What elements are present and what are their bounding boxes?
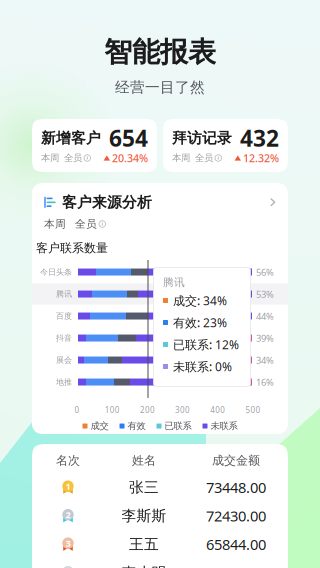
- staticText: 73448.00: [206, 477, 266, 497]
- button[interactable]: 拜访记录: [163, 119, 288, 172]
- staticText: 经营一目了然: [115, 78, 205, 96]
- staticText: 2: [65, 508, 70, 521]
- button[interactable]: 4: [40, 558, 280, 568]
- staticText: 400: [210, 405, 225, 415]
- staticText: 34%: [256, 354, 274, 366]
- staticText: 34%: [203, 292, 227, 308]
- staticText: 44%: [256, 310, 274, 322]
- staticText: 客户来源分析: [62, 193, 152, 211]
- button[interactable]: 新增客户: [32, 119, 157, 172]
- staticText: 新增客户: [41, 129, 101, 147]
- staticText: 成交:: [173, 292, 200, 308]
- button[interactable]: 客户来源分析: [44, 191, 276, 213]
- staticText: 成交金额: [212, 453, 260, 468]
- staticText: 500: [245, 405, 260, 415]
- staticText: 张三: [129, 478, 159, 496]
- staticText: 4: [65, 565, 70, 568]
- button[interactable]: 2: [40, 501, 280, 530]
- staticText: 今日头条: [40, 267, 72, 277]
- staticText: 智能报表: [104, 35, 216, 69]
- staticText: 李小明: [121, 564, 166, 568]
- staticText: 王五: [129, 535, 159, 553]
- staticText: 300: [175, 405, 190, 415]
- staticText: 23%: [203, 314, 227, 330]
- staticText: 李斯斯: [121, 507, 166, 525]
- staticText: 腾讯: [56, 289, 72, 299]
- staticText: 本周: [44, 217, 66, 231]
- staticText: 全员: [75, 217, 97, 231]
- staticText: 654: [109, 123, 148, 153]
- staticText: 客户联系数量: [36, 241, 108, 255]
- staticText: 已联系: [164, 420, 191, 432]
- staticText: 200: [140, 405, 155, 415]
- staticText: 12%: [215, 336, 239, 352]
- staticText: 56%: [256, 266, 274, 278]
- staticText: 拜访记录: [172, 129, 232, 147]
- staticText: 百度: [56, 311, 72, 321]
- staticText: 全员: [195, 152, 213, 164]
- staticText: 全员: [64, 152, 82, 164]
- staticText: 12.32%: [243, 151, 279, 165]
- staticText: 展会: [56, 355, 72, 365]
- staticText: 53%: [256, 288, 274, 300]
- staticText: 成交: [90, 420, 108, 432]
- staticText: 432: [240, 123, 279, 153]
- staticText: 0%: [215, 358, 232, 374]
- staticText: 3: [65, 537, 70, 549]
- staticText: 1: [65, 480, 70, 492]
- button[interactable]: 1: [40, 473, 280, 501]
- staticText: 72430.00: [206, 506, 266, 525]
- staticText: 39%: [256, 332, 274, 344]
- staticText: 有效:: [173, 314, 200, 330]
- staticText: 未联系:: [173, 358, 212, 374]
- staticText: 65844.00: [206, 534, 266, 554]
- staticText: 地推: [56, 377, 72, 387]
- staticText: 16%: [256, 376, 274, 388]
- staticText: 腾讯: [163, 276, 185, 289]
- staticText: 0: [74, 405, 79, 415]
- staticText: 有效: [127, 420, 145, 432]
- staticText: 本周: [41, 152, 59, 164]
- staticText: 20.34%: [112, 151, 148, 165]
- staticText: 抖音: [56, 333, 72, 343]
- staticText: 已联系:: [173, 336, 212, 352]
- staticText: 未联系: [210, 420, 237, 432]
- staticText: 100: [105, 405, 120, 415]
- staticText: 名次: [56, 453, 80, 468]
- button[interactable]: 3: [40, 530, 280, 558]
- staticText: 姓名: [132, 453, 156, 468]
- staticText: 本周: [172, 152, 190, 164]
